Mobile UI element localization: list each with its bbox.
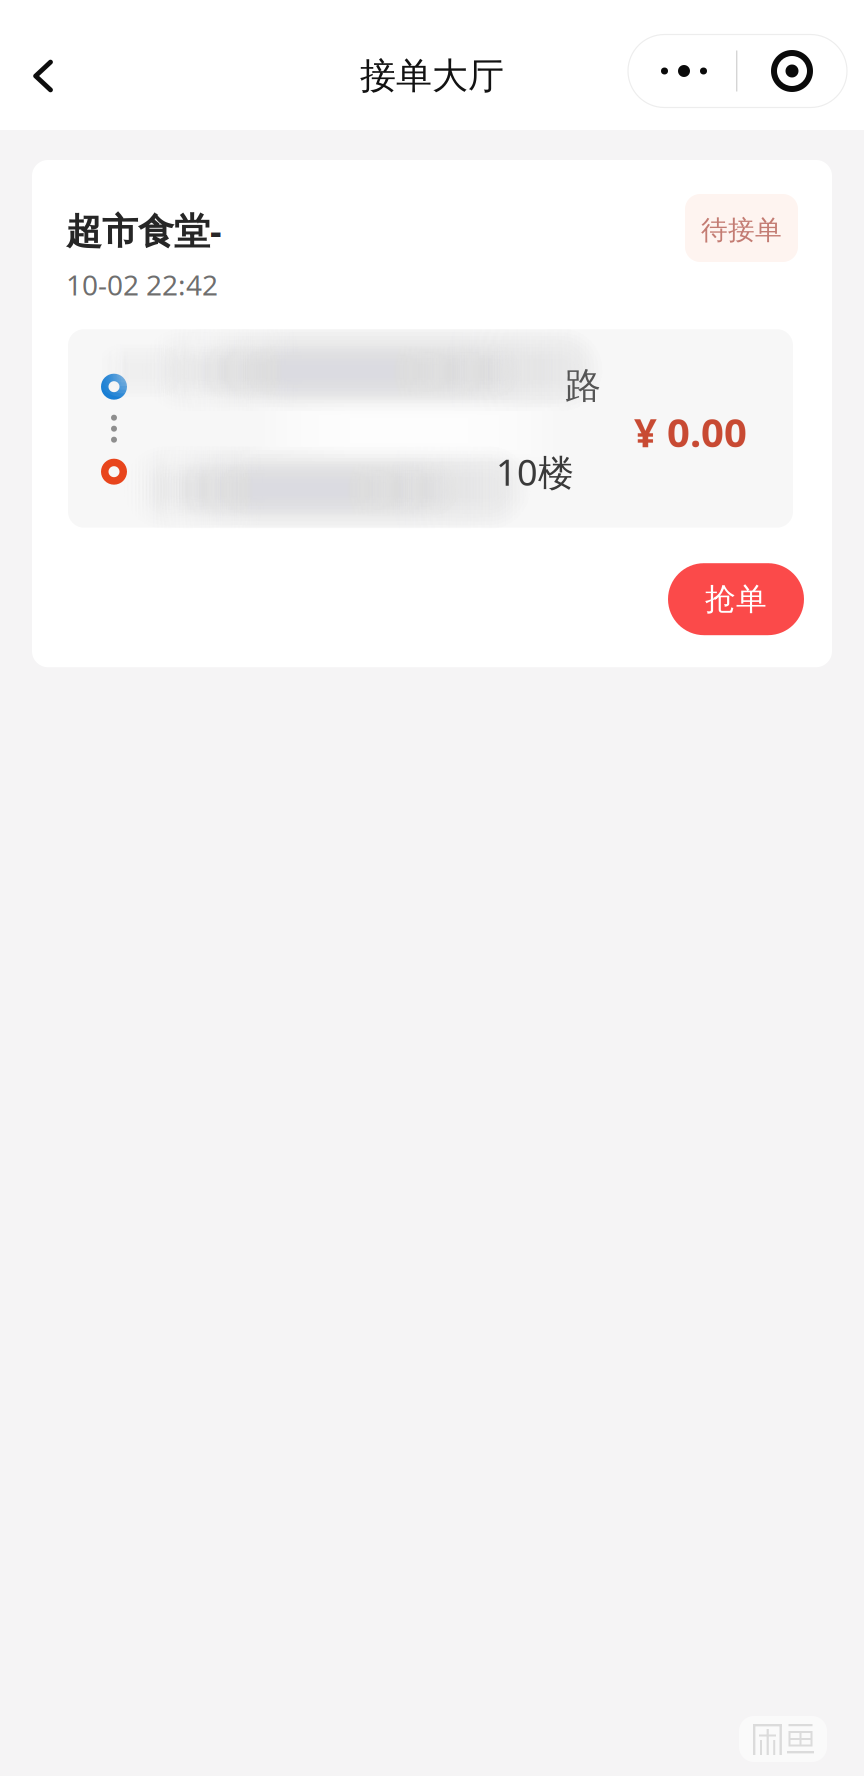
staticText: 路 <box>565 364 601 408</box>
staticText: 10-02 22:42 <box>66 266 218 303</box>
button[interactable]: 超市食堂- <box>32 160 832 667</box>
staticText: 10楼 <box>496 448 574 496</box>
staticText: ¥ 0.00 <box>634 405 747 458</box>
button[interactable]: 抢单 <box>668 563 804 635</box>
staticText: 抢单 <box>705 580 767 618</box>
button[interactable]: Back <box>0 0 86 130</box>
button[interactable]: More options and close mini program <box>628 28 864 101</box>
staticText: 待接单 <box>701 214 782 246</box>
staticText: 接单大厅 <box>360 54 504 98</box>
staticText: 超市食堂- <box>66 206 222 254</box>
